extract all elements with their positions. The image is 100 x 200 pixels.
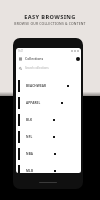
staticText: NFL (26, 135, 33, 139)
staticText: NBA (26, 152, 34, 156)
staticText: EASY BROWSING (0, 13, 100, 21)
staticText: BEACHWEAR (26, 84, 47, 88)
button[interactable]: NBA (16, 145, 81, 162)
button[interactable]: MLB (16, 162, 81, 173)
button[interactable]: Account (76, 57, 80, 61)
staticText: Collections (25, 56, 44, 61)
button[interactable]: BEACHWEAR (16, 77, 81, 94)
staticText: 9:41 (18, 49, 24, 53)
staticText: APPAREL (26, 101, 41, 105)
button[interactable]: NFL (16, 128, 81, 145)
staticText: Search collections (25, 66, 49, 70)
button[interactable]: Search collections (16, 64, 81, 72)
staticText: MLB (26, 169, 34, 173)
button[interactable]: Open navigation menu (16, 54, 25, 63)
staticText: BLK (26, 118, 33, 122)
staticText: BROWSE OUR COLLECTIONS & CONTENT (0, 21, 100, 26)
button[interactable]: APPAREL (16, 94, 81, 111)
button[interactable]: BLK (16, 111, 81, 128)
